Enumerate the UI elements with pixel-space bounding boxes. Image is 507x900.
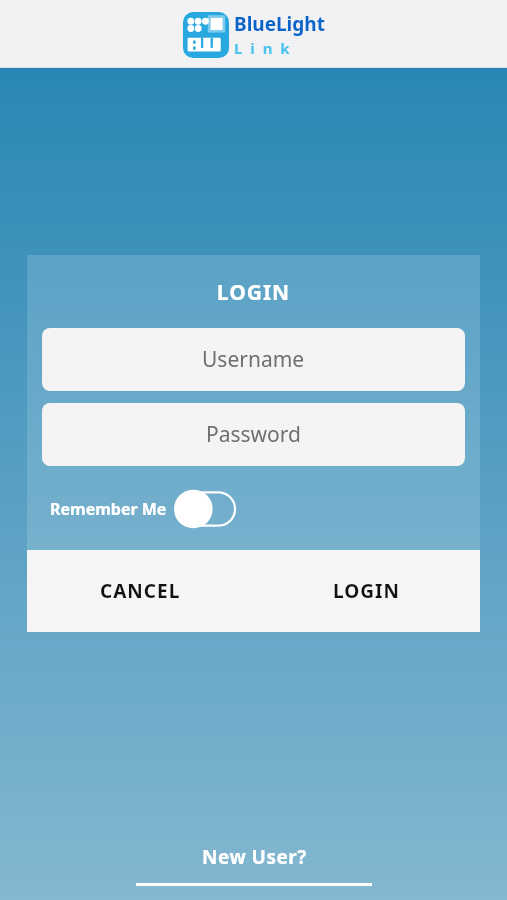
button[interactable]: New User? (136, 844, 372, 886)
button[interactable]: Password (42, 403, 465, 466)
button[interactable]: LOGIN (253, 550, 480, 632)
staticText: BlueLight (234, 11, 325, 37)
staticText: Username (202, 345, 305, 374)
staticText: LOGIN (27, 278, 480, 307)
staticText: CANCEL (100, 578, 181, 604)
button[interactable]: CANCEL (27, 550, 253, 632)
button[interactable]: Remember Me toggle (173, 486, 239, 532)
button[interactable]: Remember Me (50, 486, 239, 532)
staticText: New User? (202, 844, 307, 870)
button[interactable]: Username (42, 328, 465, 391)
staticText: LOGIN (333, 578, 400, 604)
staticText: Remember Me (50, 498, 167, 520)
staticText: Password (206, 420, 301, 449)
staticText: L i n k (234, 38, 292, 58)
